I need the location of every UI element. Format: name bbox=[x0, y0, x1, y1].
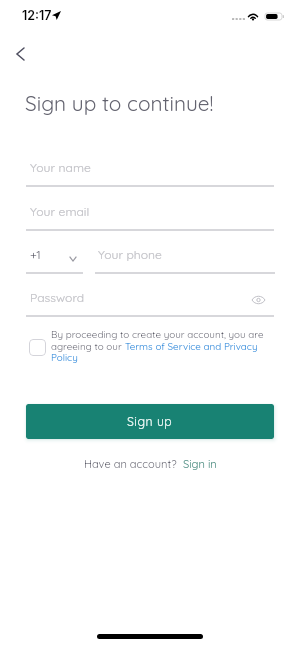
button[interactable]: Sign in bbox=[183, 457, 217, 471]
button[interactable]: By proceeding to create your account, yo… bbox=[26, 328, 274, 368]
button[interactable]: Back bbox=[3, 36, 38, 71]
staticText: By proceeding to create your account, yo… bbox=[51, 328, 264, 340]
staticText: 12:17 bbox=[22, 8, 52, 23]
button[interactable]: Sign up bbox=[26, 404, 274, 439]
staticText: Password bbox=[30, 290, 85, 305]
button[interactable]: Your email bbox=[26, 197, 274, 231]
button[interactable]: Your name bbox=[26, 153, 274, 187]
button[interactable]: Password bbox=[26, 283, 274, 317]
staticText: Terms of Service and Privacy bbox=[125, 340, 258, 352]
staticText: Sign up to continue! bbox=[25, 90, 214, 116]
staticText: agreeing to our bbox=[51, 340, 125, 352]
staticText: +1 bbox=[30, 247, 41, 262]
staticText: Policy bbox=[51, 351, 78, 363]
staticText: Your email bbox=[30, 204, 90, 219]
button[interactable]: Your phone bbox=[95, 240, 275, 274]
staticText: Have an account? bbox=[84, 457, 177, 471]
button[interactable]: Show password bbox=[247, 289, 269, 311]
staticText: Sign in bbox=[183, 457, 217, 471]
staticText: Your name bbox=[30, 160, 91, 175]
staticText: Your phone bbox=[98, 247, 162, 262]
staticText: Sign up bbox=[127, 414, 173, 429]
button[interactable]: +1 bbox=[26, 240, 83, 274]
